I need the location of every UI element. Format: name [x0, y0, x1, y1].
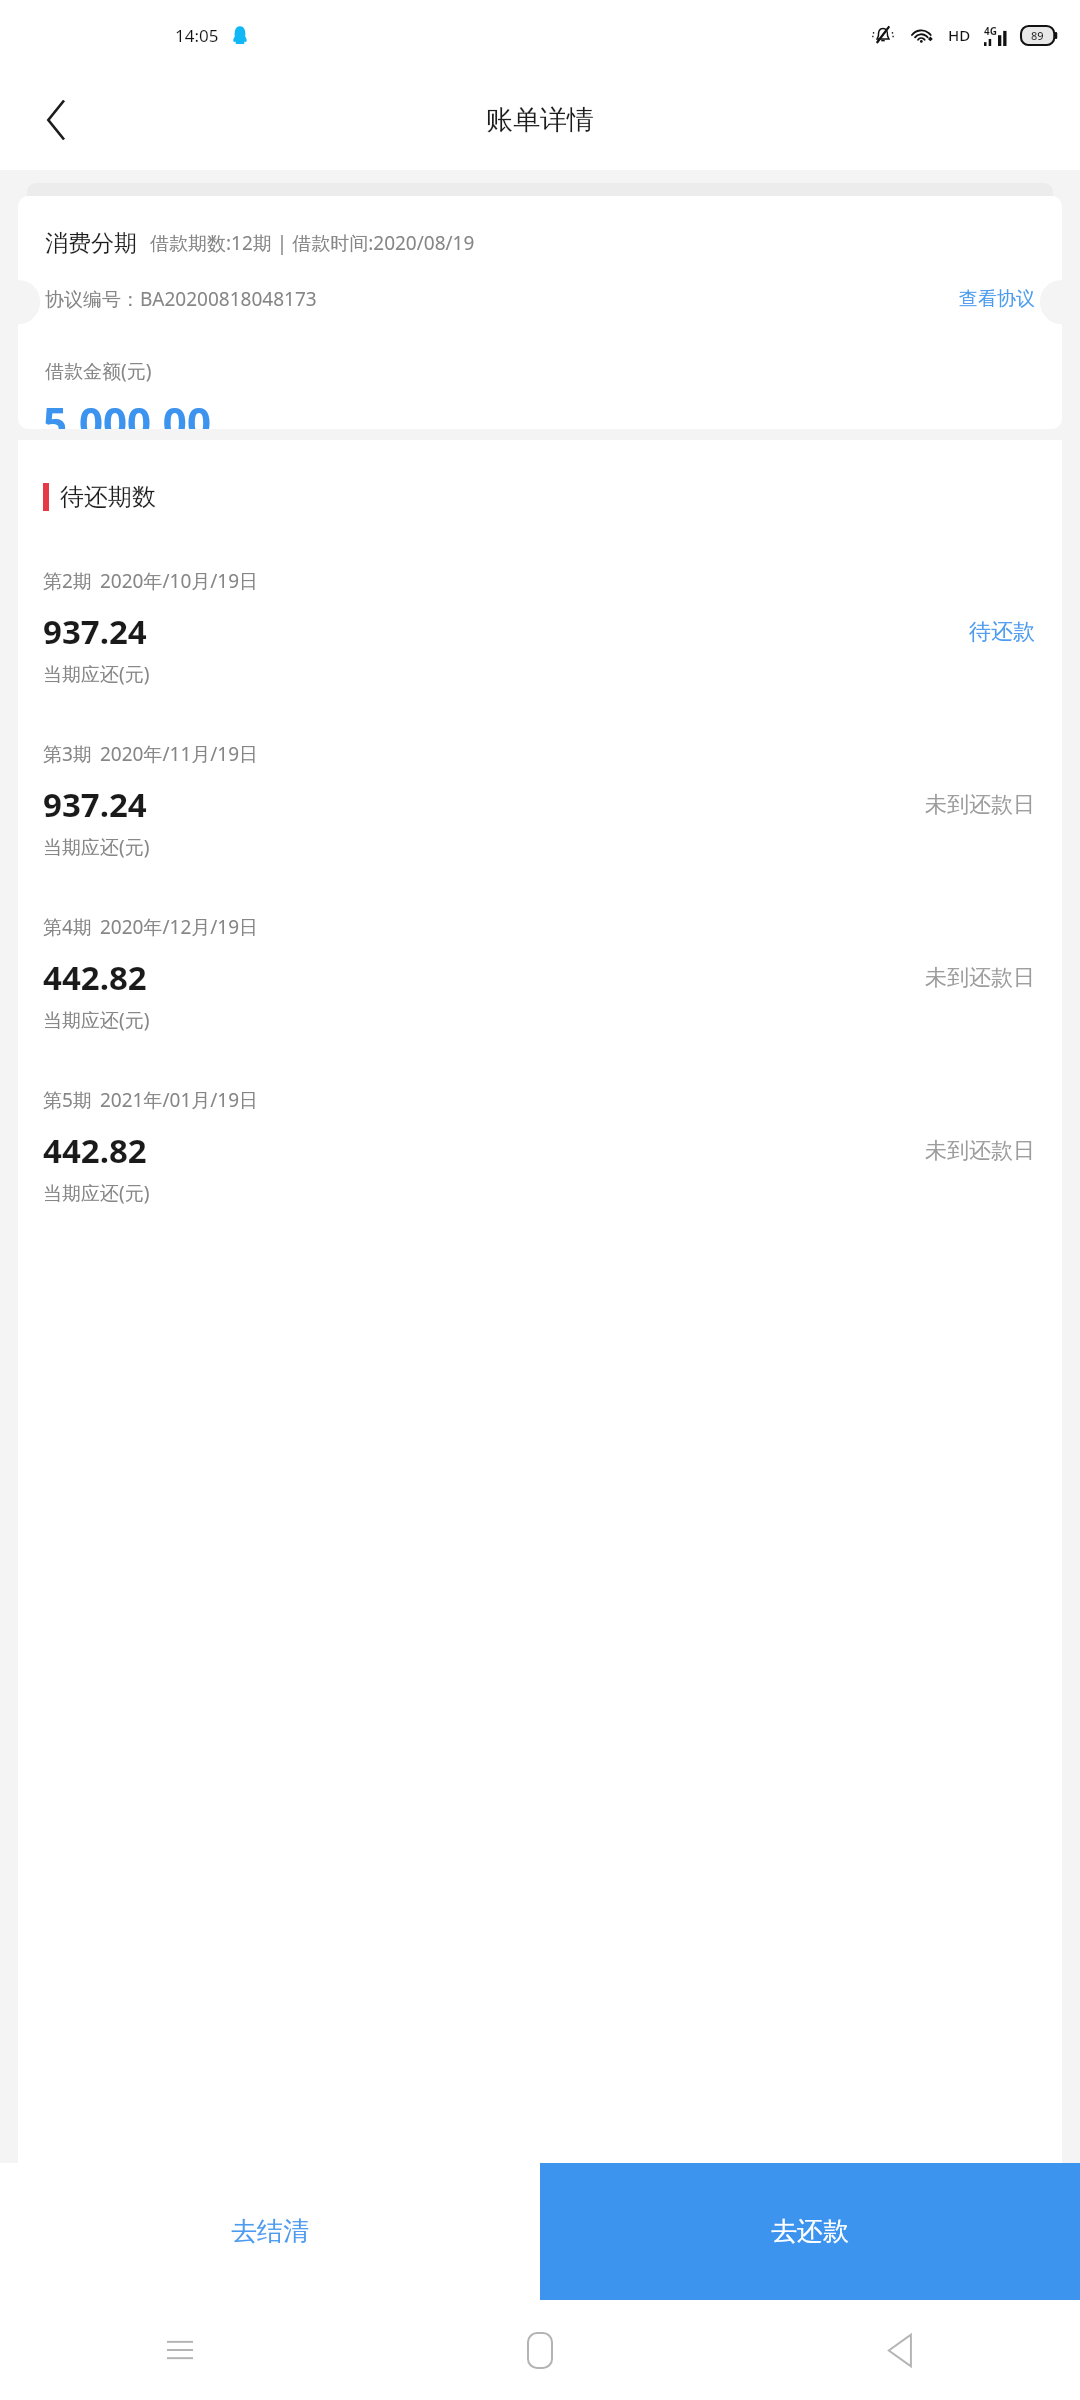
staticText: 2020年/10月/19日 [100, 568, 259, 594]
button[interactable]: Recents [0, 2300, 360, 2400]
staticText: 协议编号：BA20200818048173 [45, 286, 317, 312]
staticText: 当期应还(元) [43, 661, 150, 687]
staticText: 937.24 [43, 609, 147, 654]
button[interactable]: 第3期 [18, 727, 1062, 900]
staticText: 借款金额(元) [45, 358, 152, 384]
staticText: 待还期数 [60, 482, 156, 512]
staticText: 当期应还(元) [43, 1007, 150, 1033]
staticText: 未到还款日 [925, 1137, 1035, 1165]
button[interactable]: 查看协议 [959, 287, 1035, 311]
staticText: 当期应还(元) [43, 1180, 150, 1206]
staticText: 2020年/12月/19日 [100, 914, 259, 940]
staticText: 第5期 [43, 1087, 92, 1113]
staticText: 第4期 [43, 914, 92, 940]
button[interactable]: 第4期 [18, 900, 1062, 1073]
staticText: 账单详情 [486, 103, 594, 137]
button[interactable]: 去结清 [0, 2163, 540, 2300]
staticText: 借款期数:12期 | 借款时间:2020/08/19 [150, 230, 475, 256]
staticText: 去还款 [771, 2215, 849, 2248]
staticText: 当期应还(元) [43, 834, 150, 860]
button[interactable]: 第5期 [18, 1073, 1062, 1246]
button[interactable]: Back [720, 2300, 1080, 2400]
staticText: 5,000.00 [43, 393, 211, 429]
staticText: 937.24 [43, 782, 147, 827]
button[interactable]: 第2期 [18, 554, 1062, 727]
staticText: 未到还款日 [925, 791, 1035, 819]
staticText: 14:05 [175, 24, 219, 47]
staticText: 第2期 [43, 568, 92, 594]
button[interactable]: Home [360, 2300, 720, 2400]
button[interactable]: 去还款 [540, 2163, 1080, 2300]
button[interactable]: Back [16, 80, 96, 160]
staticText: 2020年/11月/19日 [100, 741, 259, 767]
staticText: 未到还款日 [925, 964, 1035, 992]
staticText: 89 [1031, 28, 1044, 43]
staticText: 消费分期 [45, 229, 137, 258]
staticText: 待还款 [969, 618, 1035, 646]
staticText: 去结清 [231, 2215, 309, 2248]
staticText: 442.82 [43, 955, 147, 1000]
staticText: 2021年/01月/19日 [100, 1087, 259, 1113]
staticText: 查看协议 [959, 287, 1035, 311]
staticText: HD [948, 25, 971, 45]
staticText: 4G [984, 24, 997, 38]
staticText: 442.82 [43, 1128, 147, 1173]
staticText: 第3期 [43, 741, 92, 767]
